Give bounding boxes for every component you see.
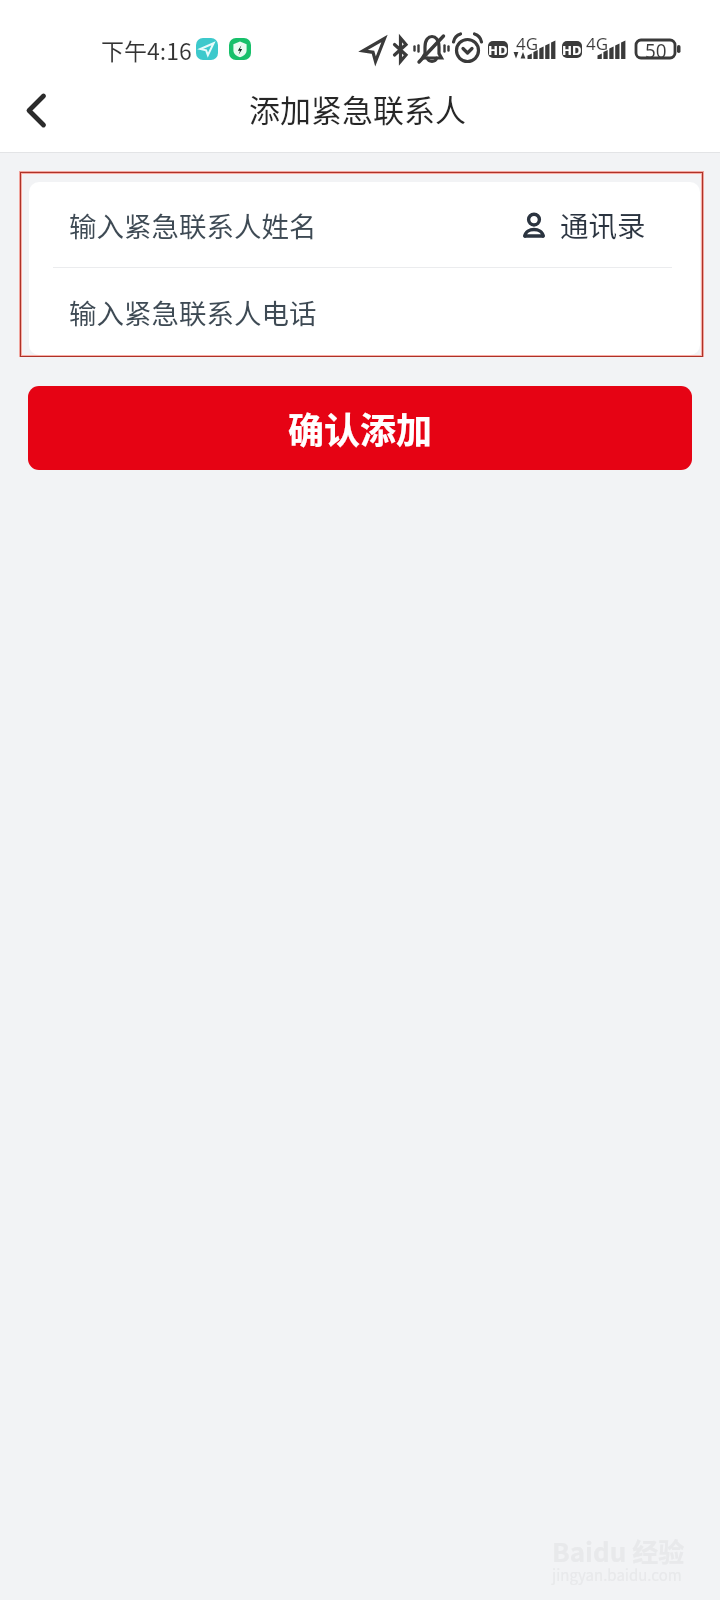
staticText: 4G xyxy=(516,32,539,55)
button[interactable]: 确认添加 xyxy=(28,386,692,470)
staticText: 50 xyxy=(645,38,667,58)
staticText: Baidu 经验 xyxy=(552,1532,685,1570)
staticText: 下午4:16 xyxy=(101,33,192,66)
staticText: 添加紧急联系人 xyxy=(249,86,466,131)
staticText: 输入紧急联系人姓名 xyxy=(69,205,317,245)
staticText: jingyan.baidu.com xyxy=(552,1564,682,1586)
button[interactable]: Back xyxy=(0,78,70,153)
staticText: HD xyxy=(562,41,582,58)
button[interactable]: 通讯录 xyxy=(520,204,648,245)
staticText: 输入紧急联系人电话 xyxy=(69,292,317,332)
staticText: 通讯录 xyxy=(560,204,646,245)
staticText: 确认添加 xyxy=(288,402,433,454)
staticText: HD xyxy=(488,41,508,58)
button[interactable]: 输入紧急联系人姓名 xyxy=(29,182,700,267)
staticText: 4G xyxy=(586,32,609,55)
button[interactable]: 输入紧急联系人电话 xyxy=(29,268,700,355)
